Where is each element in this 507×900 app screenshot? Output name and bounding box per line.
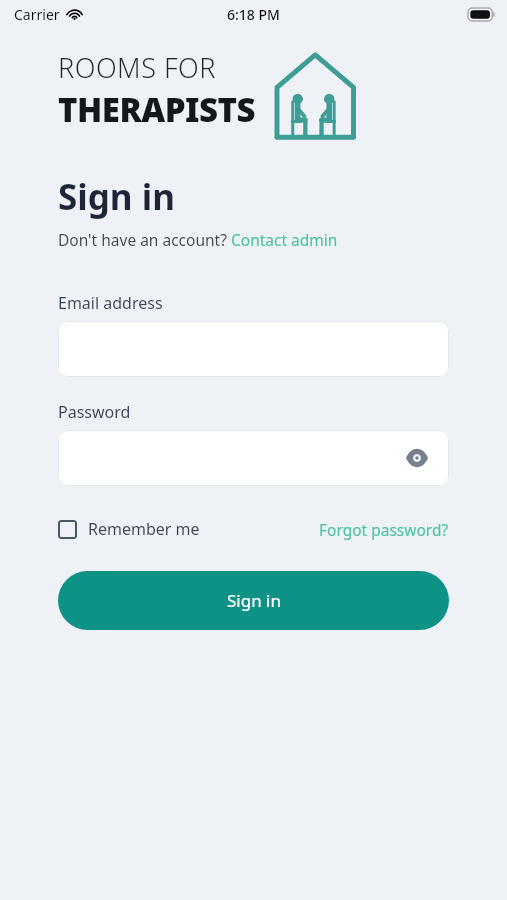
staticText: ROOMS FOR — [58, 49, 216, 86]
button[interactable]: Show password — [58, 430, 449, 486]
staticText: Don't have an account? — [58, 229, 231, 250]
button[interactable]: Forgot password? — [319, 519, 449, 540]
staticText: Email address — [58, 292, 163, 314]
staticText: Contact admin — [231, 229, 338, 250]
button[interactable] — [58, 321, 449, 377]
staticText: Carrier — [14, 5, 60, 24]
staticText: Forgot password? — [319, 519, 449, 540]
staticText: Remember me — [88, 518, 200, 540]
staticText: THERAPISTS — [58, 87, 256, 132]
button[interactable]: Contact admin — [231, 229, 338, 250]
staticText: Password — [58, 401, 131, 423]
staticText: Sign in — [227, 589, 281, 612]
button[interactable]: Sign in — [58, 571, 449, 630]
button[interactable]: Show password — [405, 446, 429, 470]
staticText: 6:18 PM — [227, 5, 280, 24]
staticText: Sign in — [58, 173, 175, 221]
button[interactable]: Remember me — [58, 518, 200, 540]
